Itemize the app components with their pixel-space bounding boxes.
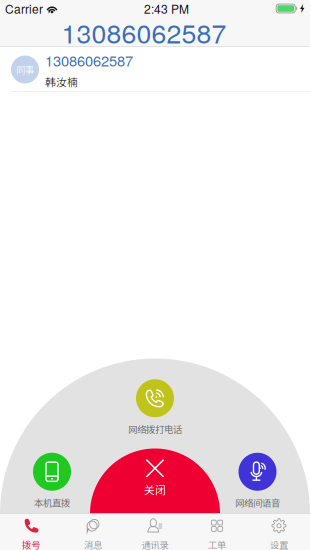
- button[interactable]: 同事: [0, 47, 310, 92]
- staticText: 韩汝楠: [45, 74, 78, 89]
- staticText: 同事: [16, 63, 34, 76]
- button[interactable]: 网络拨打电话: [128, 379, 182, 436]
- staticText: 消息: [84, 538, 102, 550]
- button[interactable]: 关闭: [0, 0, 310, 550]
- staticText: 网络间语音: [235, 496, 280, 509]
- staticText: 13086062587: [61, 13, 226, 51]
- button[interactable]: 网络间语音: [235, 453, 280, 509]
- button[interactable]: 设置: [248, 514, 310, 550]
- staticText: 工单: [208, 538, 226, 550]
- button[interactable]: 拨号: [0, 514, 62, 550]
- staticText: 13086062587: [45, 50, 133, 71]
- staticText: 关闭: [144, 482, 166, 497]
- staticText: 设置: [270, 538, 288, 550]
- staticText: 网络拨打电话: [128, 422, 182, 436]
- staticText: 通讯录: [141, 538, 168, 550]
- staticText: 2:43 PM: [144, 0, 189, 17]
- staticText: Carrier: [5, 0, 43, 17]
- button[interactable]: 工单: [186, 514, 248, 550]
- button[interactable]: 本机直拨: [33, 453, 71, 509]
- button[interactable]: 通讯录: [124, 514, 186, 550]
- staticText: 本机直拨: [34, 496, 70, 509]
- button[interactable]: 消息: [62, 514, 124, 550]
- staticText: 拨号: [22, 538, 40, 550]
